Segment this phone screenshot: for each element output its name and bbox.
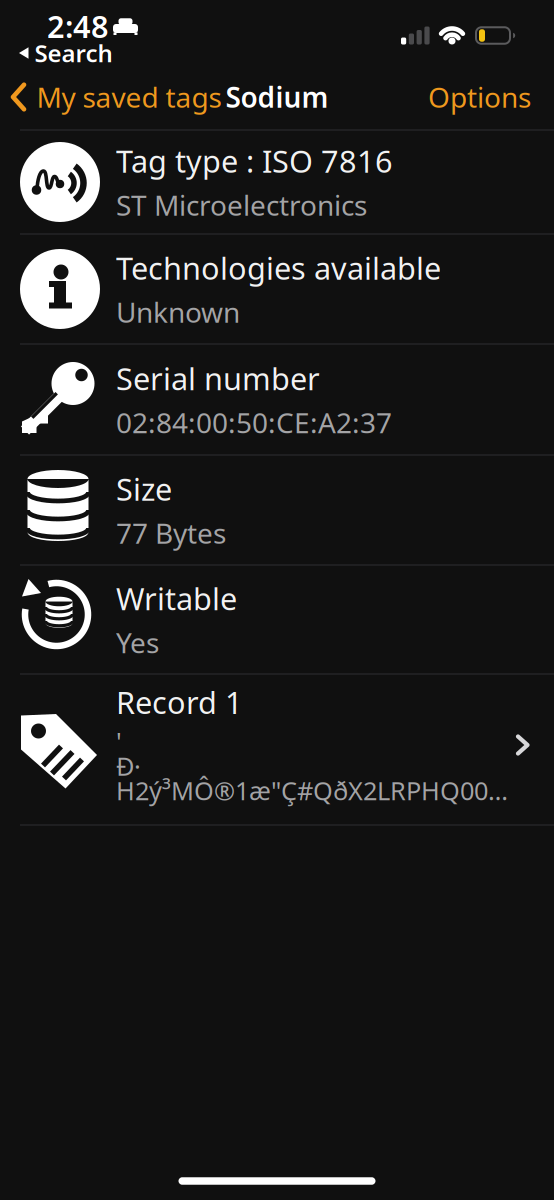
staticText: Technologies available — [116, 247, 441, 288]
staticText: Search — [34, 37, 112, 69]
staticText: ' — [116, 724, 122, 758]
button[interactable]: Serial number — [0, 344, 554, 454]
button[interactable]: Size — [0, 455, 554, 565]
staticText: Tag type : ISO 7816 — [116, 140, 393, 181]
staticText: My saved tags — [36, 78, 221, 116]
staticText: Yes — [116, 624, 159, 661]
staticText: H2ý³MÔ®1æ"Ç#QðX2LRPHQ00043... — [116, 774, 512, 807]
staticText: Options — [428, 78, 531, 116]
staticText: Đ· — [116, 749, 141, 783]
staticText: Record 1 — [116, 682, 243, 722]
staticText: ST Microelectronics — [116, 186, 367, 223]
button[interactable]: Record 1 — [0, 674, 554, 825]
staticText: Serial number — [116, 358, 320, 399]
staticText: Size — [116, 468, 172, 509]
button[interactable]: Technologies available — [0, 234, 554, 344]
staticText: 02:84:00:50:CE:A2:37 — [116, 404, 392, 441]
staticText: Sodium — [225, 78, 328, 116]
staticText: 2:48 — [47, 6, 109, 46]
button[interactable]: Writable — [0, 565, 554, 674]
staticText: 77 Bytes — [116, 514, 226, 551]
button[interactable]: Options — [391, 77, 531, 117]
button[interactable]: Back to Search — [19, 41, 179, 65]
button[interactable]: Back to My saved tags — [11, 77, 271, 117]
staticText: Writable — [116, 578, 237, 619]
staticText: Unknown — [116, 293, 240, 330]
button[interactable]: Tag type : ISO 7816 — [0, 130, 554, 233]
